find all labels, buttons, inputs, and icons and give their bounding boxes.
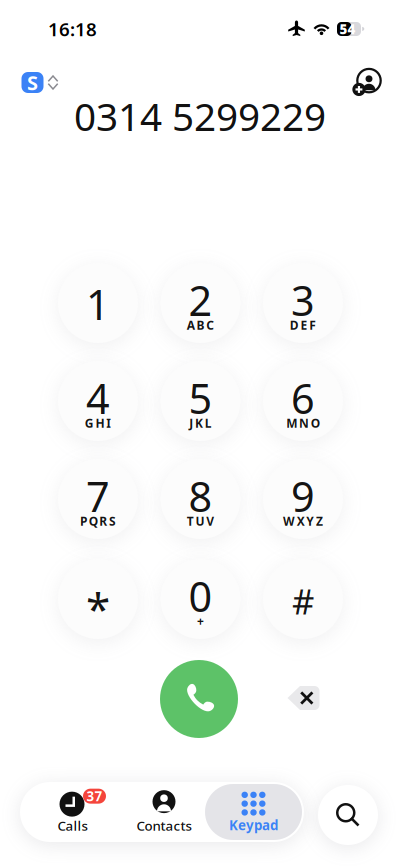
- staticText: E: [300, 317, 307, 333]
- button[interactable]: 8: [160, 459, 240, 539]
- staticText: T: [187, 513, 194, 529]
- staticText: H: [95, 415, 104, 431]
- staticText: 54: [339, 20, 355, 38]
- staticText: 5: [188, 371, 212, 425]
- button[interactable]: Delete: [281, 680, 325, 716]
- staticText: 6: [291, 371, 315, 425]
- staticText: S: [109, 513, 116, 529]
- staticText: O: [311, 415, 320, 431]
- staticText: 1: [86, 277, 110, 331]
- staticText: X: [297, 513, 305, 529]
- button[interactable]: 2: [160, 263, 240, 343]
- staticText: V: [206, 513, 214, 529]
- button[interactable]: 1: [58, 263, 138, 343]
- staticText: R: [99, 513, 107, 529]
- button[interactable]: Contacts: [123, 784, 205, 840]
- staticText: B: [196, 317, 204, 333]
- staticText: S: [27, 69, 38, 96]
- staticText: K: [195, 415, 203, 431]
- staticText: 2: [188, 273, 212, 327]
- staticText: +: [197, 613, 204, 629]
- staticText: U: [195, 513, 204, 529]
- button[interactable]: 0: [160, 559, 240, 639]
- staticText: Y: [306, 513, 314, 529]
- button[interactable]: 5: [160, 361, 240, 441]
- staticText: 0314 5299229: [74, 90, 326, 142]
- staticText: P: [80, 513, 87, 529]
- staticText: W: [283, 513, 295, 529]
- staticText: 37: [86, 787, 102, 805]
- staticText: A: [187, 317, 195, 333]
- button[interactable]: Add contact: [348, 65, 384, 101]
- staticText: 0: [188, 569, 212, 623]
- staticText: 9: [291, 469, 315, 523]
- staticText: N: [299, 415, 309, 431]
- staticText: Keypad: [229, 816, 278, 834]
- button[interactable]: 9: [263, 459, 343, 539]
- staticText: D: [290, 317, 299, 333]
- button[interactable]: 6: [263, 361, 343, 441]
- button[interactable]: S: [19, 68, 61, 96]
- button[interactable]: 7: [58, 459, 138, 539]
- button[interactable]: #: [263, 559, 343, 639]
- button[interactable]: Call: [160, 660, 238, 738]
- staticText: G: [85, 415, 94, 431]
- staticText: F: [309, 317, 316, 333]
- button[interactable]: 4: [58, 361, 138, 441]
- staticText: 4: [86, 371, 110, 425]
- staticText: Contacts: [136, 817, 191, 834]
- button[interactable]: 37: [22, 784, 123, 840]
- staticText: 7: [86, 469, 110, 523]
- staticText: #: [292, 578, 314, 624]
- staticText: C: [206, 317, 214, 333]
- staticText: L: [205, 415, 212, 431]
- staticText: 3: [291, 273, 315, 327]
- staticText: M: [286, 415, 297, 431]
- staticText: Q: [89, 513, 98, 529]
- staticText: J: [189, 415, 193, 431]
- staticText: 8: [188, 469, 212, 523]
- staticText: 16:18: [48, 17, 97, 41]
- staticText: *: [86, 579, 110, 637]
- button[interactable]: *: [58, 559, 138, 639]
- button[interactable]: 3: [263, 263, 343, 343]
- staticText: Z: [316, 513, 323, 529]
- staticText: I: [106, 415, 111, 431]
- button[interactable]: Search: [318, 785, 378, 845]
- button[interactable]: Keypad: [205, 784, 302, 840]
- staticText: Calls: [57, 817, 87, 834]
